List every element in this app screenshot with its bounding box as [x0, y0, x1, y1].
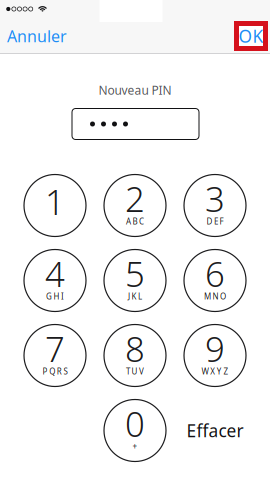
button[interactable]: 2: [95, 168, 175, 243]
button[interactable]: 3: [175, 168, 255, 243]
staticText: OK: [238, 24, 263, 47]
staticText: 6: [205, 250, 225, 296]
staticText: 8: [125, 325, 145, 371]
staticText: Nouveau PIN: [98, 82, 171, 98]
staticText: 4: [45, 250, 65, 296]
staticText: 0: [125, 400, 145, 446]
button[interactable]: 7: [15, 318, 95, 393]
staticText: ABC: [126, 216, 144, 227]
button[interactable]: 9: [175, 318, 255, 393]
staticText: 3: [205, 175, 225, 221]
button[interactable]: 8: [95, 318, 175, 393]
staticText: 9: [205, 325, 225, 371]
staticText: WXYZ: [202, 366, 228, 377]
staticText: PQRS: [43, 366, 67, 377]
staticText: 2: [125, 175, 145, 221]
button[interactable]: 0: [95, 393, 175, 468]
button[interactable]: 4: [15, 243, 95, 318]
button[interactable]: Annuler: [12, 25, 62, 47]
staticText: MNO: [204, 291, 226, 302]
staticText: Effacer: [186, 419, 243, 442]
staticText: 7: [45, 325, 65, 371]
button[interactable]: 1: [15, 168, 95, 243]
staticText: JKL: [128, 291, 142, 302]
button[interactable]: 5: [95, 243, 175, 318]
staticText: TUV: [126, 366, 144, 377]
staticText: 5: [125, 250, 145, 296]
button[interactable]: Effacer: [175, 393, 255, 468]
staticText: +: [132, 441, 137, 452]
staticText: GHI: [46, 291, 64, 302]
button[interactable]: OK: [239, 26, 263, 46]
staticText: 1: [45, 178, 65, 224]
button[interactable]: 6: [175, 243, 255, 318]
staticText: Annuler: [7, 25, 67, 47]
staticText: DEF: [206, 216, 224, 227]
